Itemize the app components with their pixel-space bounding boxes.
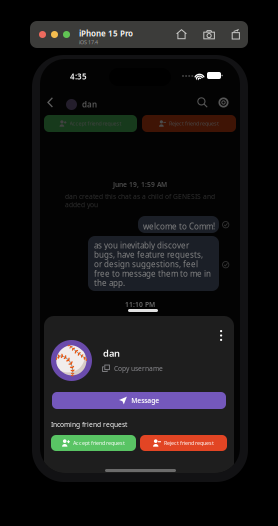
staticText: dan [82, 99, 97, 110]
staticText: as you inevitably discover bugs, have fe… [94, 240, 211, 288]
staticText: 4:35 [70, 71, 87, 82]
button[interactable]: Settings [218, 97, 229, 108]
button[interactable]: Copy username [102, 362, 163, 375]
button[interactable]: Accept friend request [51, 435, 136, 451]
staticText: Copy username [114, 364, 163, 373]
button[interactable]: More options [215, 325, 227, 346]
button[interactable]: Screenshot [203, 29, 215, 40]
staticText: dan [103, 347, 120, 359]
staticText: 11:10 PM [125, 300, 155, 309]
staticText: Accept friend request [73, 439, 125, 447]
staticText: ⚾ [54, 344, 89, 376]
staticText: Reject friend request [169, 120, 219, 127]
staticText: welcome to Comm! [143, 221, 215, 232]
button[interactable]: Home [176, 29, 187, 40]
staticText: iPhone 15 Pro [79, 28, 133, 39]
button[interactable]: dan [66, 95, 97, 114]
staticText: Message [131, 396, 159, 405]
button[interactable]: Back [42, 92, 58, 113]
button[interactable]: Accept friend request [44, 115, 137, 132]
staticText: June 19, 1:59 AM [113, 180, 167, 189]
staticText: iOS 17.4 [79, 39, 98, 46]
button[interactable]: Reject friend request [140, 435, 227, 451]
button[interactable]: Reject friend request [142, 115, 236, 132]
staticText: Incoming friend request [51, 420, 127, 429]
staticText: dan created this chat as a child of GENE… [65, 192, 215, 209]
staticText: Accept friend request [69, 120, 121, 127]
button[interactable]: Message [52, 392, 226, 409]
button[interactable]: Rotate [231, 29, 241, 40]
button[interactable]: Search [197, 97, 208, 108]
staticText: Reject friend request [164, 439, 214, 447]
